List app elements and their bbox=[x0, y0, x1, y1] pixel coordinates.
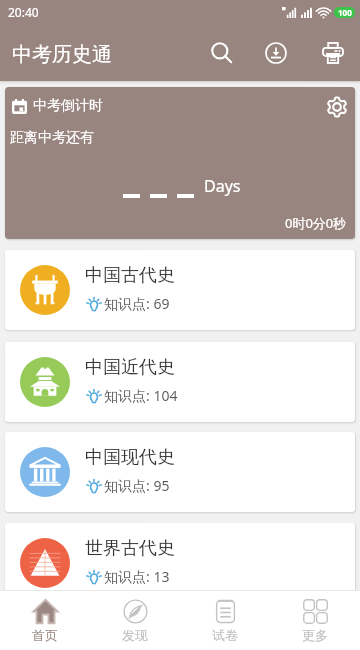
button[interactable]: 发现 bbox=[90, 591, 180, 650]
button[interactable]: Print bbox=[311, 31, 355, 75]
staticText: 中国古代史 bbox=[85, 264, 175, 287]
staticText: 中考历史通 bbox=[12, 42, 112, 67]
staticText: Days bbox=[204, 175, 241, 197]
staticText: 发现 bbox=[122, 627, 148, 643]
staticText: 中国现代史 bbox=[85, 446, 175, 469]
staticText: 距离中考还有 bbox=[10, 129, 94, 147]
button[interactable]: 更多 bbox=[270, 591, 360, 650]
staticText: 20:40 bbox=[8, 4, 39, 20]
button[interactable]: 试卷 bbox=[180, 591, 270, 650]
staticText: 更多 bbox=[302, 627, 328, 643]
staticText: 知识点: 95 bbox=[104, 476, 170, 495]
button[interactable]: 首页 bbox=[0, 591, 90, 650]
staticText: 首页 bbox=[32, 627, 58, 643]
staticText: 试卷 bbox=[212, 627, 238, 643]
staticText: 中考倒计时 bbox=[33, 97, 103, 115]
staticText: 0时0分0秒 bbox=[285, 214, 347, 232]
button[interactable]: 中国古代史 bbox=[5, 250, 355, 330]
staticText: 中国近代史 bbox=[85, 356, 175, 379]
staticText: 知识点: 69 bbox=[104, 294, 170, 313]
button[interactable]: 世界古代史 bbox=[5, 523, 355, 603]
button[interactable]: Settings bbox=[321, 91, 353, 123]
button[interactable]: 中考倒计时 bbox=[5, 87, 355, 239]
staticText: 世界古代史 bbox=[85, 537, 175, 560]
button[interactable]: 中国近代史 bbox=[5, 342, 355, 422]
button[interactable]: Download bbox=[254, 31, 298, 75]
staticText: 知识点: 13 bbox=[104, 567, 170, 586]
staticText: 知识点: 104 bbox=[104, 386, 178, 405]
button[interactable]: 中国现代史 bbox=[5, 432, 355, 512]
staticText: 100 bbox=[338, 7, 352, 18]
button[interactable]: Search bbox=[200, 31, 244, 75]
